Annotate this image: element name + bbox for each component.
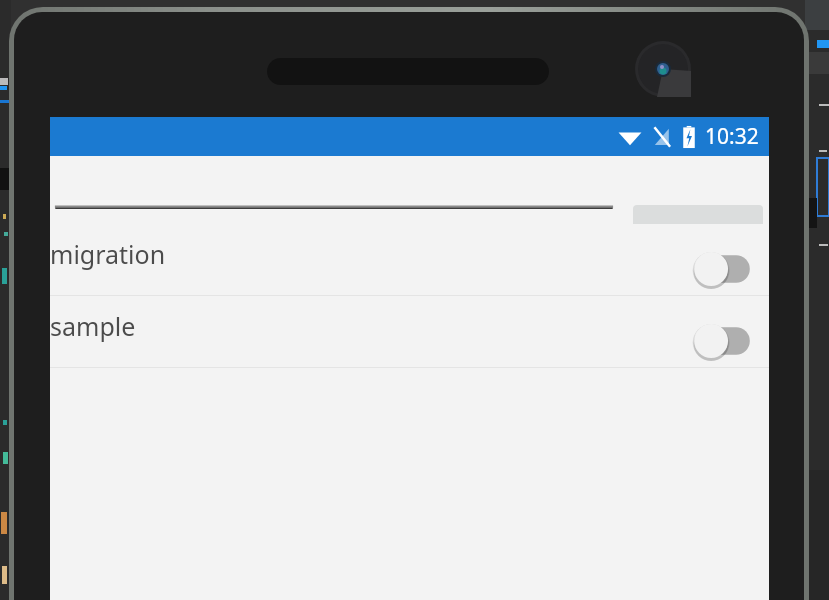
button[interactable]: Toggle sample <box>689 319 765 363</box>
staticText: 10:32 <box>705 122 759 151</box>
button[interactable]: migration <box>50 224 769 295</box>
staticText: migration <box>50 237 166 271</box>
button[interactable]: Toggle migration <box>689 247 765 291</box>
button[interactable]: sample <box>50 296 769 367</box>
staticText: sample <box>50 309 136 343</box>
button[interactable] <box>56 156 612 224</box>
button[interactable]: ADD <box>633 205 763 262</box>
staticText: ADD <box>675 219 722 249</box>
